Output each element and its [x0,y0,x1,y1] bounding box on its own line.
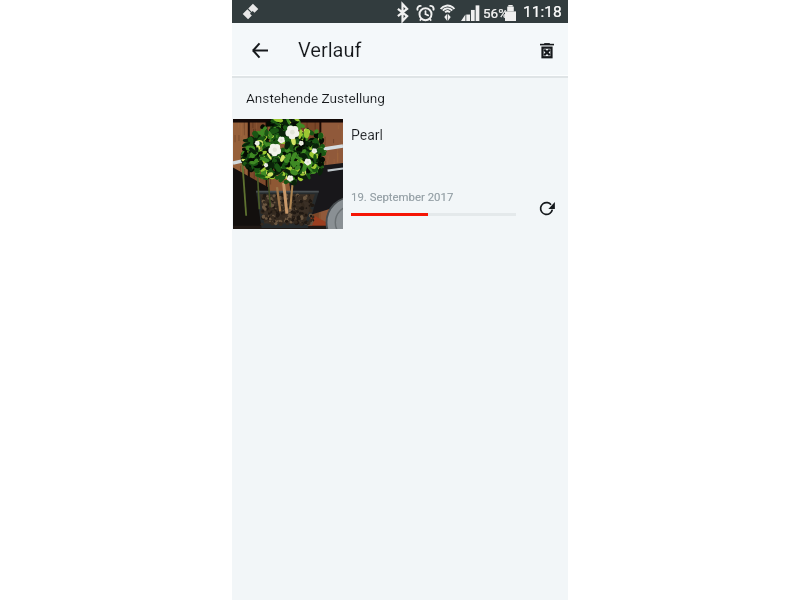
staticText: Anstehende Zustellung [246,90,385,106]
staticText: 56% [483,5,509,21]
button[interactable]: Pearl [232,119,568,229]
staticText: Verlauf [298,38,362,61]
button[interactable]: Delete history [526,30,568,72]
staticText: 19. September 2017 [351,190,454,203]
button[interactable]: Back [239,29,281,71]
button[interactable]: Refresh [530,192,562,224]
staticText: Pearl [351,127,383,143]
staticText: 11:18 [523,3,562,21]
